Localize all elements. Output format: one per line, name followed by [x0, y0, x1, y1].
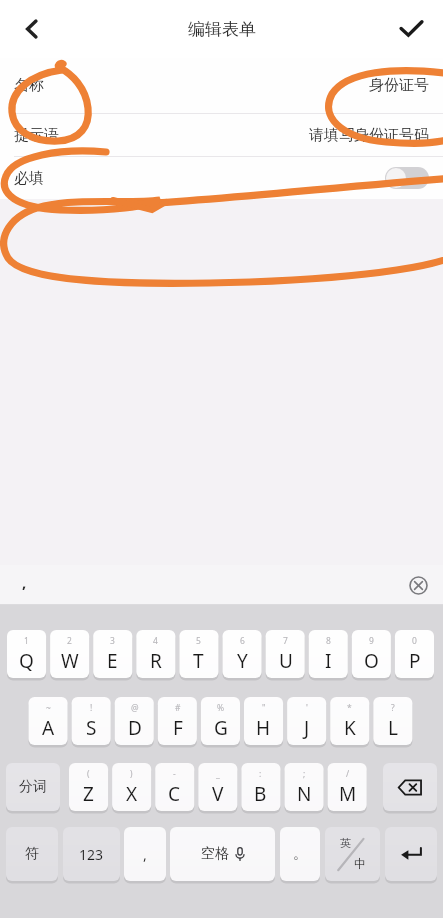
staticText: *: [347, 702, 352, 714]
staticText: 名称: [14, 76, 44, 95]
button[interactable]: 英: [325, 827, 380, 881]
staticText: T: [193, 648, 204, 674]
button[interactable]: Back: [10, 7, 54, 51]
staticText: 6: [240, 635, 245, 647]
staticText: D: [128, 715, 142, 741]
staticText: 编辑表单: [188, 19, 256, 40]
button[interactable]: 1: [7, 630, 46, 678]
staticText: ~: [46, 702, 51, 714]
staticText: 123: [79, 845, 104, 864]
button[interactable]: Enter: [385, 827, 437, 881]
button[interactable]: 4: [136, 630, 175, 678]
staticText: 。: [293, 845, 307, 863]
staticText: ": [262, 702, 266, 714]
button[interactable]: ;: [285, 763, 324, 811]
button[interactable]: ?: [373, 697, 412, 745]
staticText: M: [339, 781, 357, 807]
button[interactable]: 7: [266, 630, 305, 678]
button[interactable]: 0: [395, 630, 434, 678]
staticText: G: [214, 715, 228, 741]
staticText: 分词: [19, 778, 47, 796]
staticText: ?: [391, 702, 395, 714]
staticText: 中: [354, 856, 366, 871]
button[interactable]: :: [241, 763, 280, 811]
staticText: I: [325, 648, 332, 674]
button[interactable]: #: [158, 697, 197, 745]
button[interactable]: 分词: [6, 763, 60, 811]
button[interactable]: ": [244, 697, 283, 745]
staticText: S: [86, 715, 97, 741]
button[interactable]: (: [69, 763, 108, 811]
button[interactable]: %: [201, 697, 240, 745]
staticText: 空格: [201, 845, 229, 863]
staticText: B: [254, 781, 267, 807]
button[interactable]: @: [115, 697, 154, 745]
staticText: A: [42, 715, 55, 741]
button[interactable]: 必填: [14, 157, 429, 199]
button[interactable]: *: [330, 697, 369, 745]
staticText: %: [217, 702, 225, 714]
button[interactable]: 符: [6, 827, 58, 881]
staticText: 3: [110, 635, 115, 647]
button[interactable]: 名称: [14, 58, 429, 113]
staticText: Q: [19, 648, 34, 674]
staticText: Z: [83, 781, 94, 807]
staticText: L: [388, 715, 398, 741]
staticText: 必填: [14, 169, 44, 188]
button[interactable]: _: [198, 763, 237, 811]
button[interactable]: Confirm: [389, 7, 433, 51]
staticText: _: [216, 768, 220, 780]
button[interactable]: 6: [223, 630, 262, 678]
staticText: J: [304, 715, 310, 741]
staticText: E: [107, 648, 118, 674]
staticText: 0: [412, 635, 417, 647]
staticText: @: [131, 702, 139, 714]
button[interactable]: !: [72, 697, 111, 745]
button[interactable]: 3: [93, 630, 132, 678]
staticText: ): [130, 768, 133, 780]
button[interactable]: ~: [29, 697, 68, 745]
button[interactable]: ,: [124, 827, 166, 881]
button[interactable]: Required toggle: [385, 167, 429, 189]
button[interactable]: -: [155, 763, 194, 811]
staticText: :: [259, 768, 262, 780]
staticText: X: [126, 781, 138, 807]
staticText: 请填写身份证号码: [309, 126, 429, 145]
staticText: 提示语: [14, 126, 59, 145]
staticText: W: [61, 648, 79, 674]
staticText: ': [306, 702, 308, 714]
button[interactable]: 提示语: [14, 114, 429, 156]
staticText: V: [212, 781, 224, 807]
staticText: ,: [143, 845, 147, 864]
staticText: 身份证号: [369, 76, 429, 95]
button[interactable]: 123: [63, 827, 120, 881]
button[interactable]: ': [287, 697, 326, 745]
staticText: N: [297, 781, 312, 807]
button[interactable]: Backspace: [383, 763, 437, 811]
button[interactable]: Clear: [405, 572, 431, 598]
button[interactable]: /: [328, 763, 367, 811]
button[interactable]: 空格: [170, 827, 275, 881]
staticText: ;: [303, 768, 306, 780]
staticText: Y: [237, 648, 248, 674]
staticText: R: [150, 648, 162, 674]
button[interactable]: 8: [309, 630, 348, 678]
staticText: (: [87, 768, 90, 780]
button[interactable]: 9: [352, 630, 391, 678]
staticText: F: [173, 715, 183, 741]
button[interactable]: 。: [280, 827, 320, 881]
staticText: 英: [340, 836, 351, 850]
button[interactable]: ): [112, 763, 151, 811]
staticText: #: [175, 702, 181, 714]
staticText: O: [364, 648, 379, 674]
staticText: P: [409, 648, 421, 674]
staticText: U: [279, 648, 293, 674]
staticText: 符: [25, 845, 39, 863]
staticText: -: [173, 768, 176, 780]
staticText: C: [168, 781, 181, 807]
staticText: /: [346, 768, 350, 780]
staticText: 1: [24, 635, 29, 647]
button[interactable]: 2: [50, 630, 89, 678]
staticText: 4: [153, 635, 158, 647]
button[interactable]: 5: [179, 630, 218, 678]
